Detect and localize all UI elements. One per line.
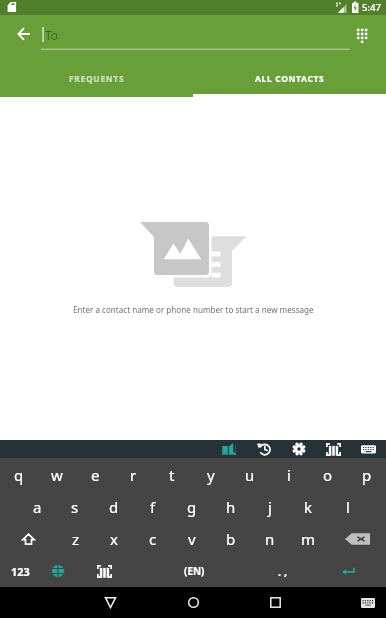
button[interactable]: i <box>269 458 308 491</box>
button[interactable]: f <box>133 491 172 523</box>
button[interactable]: Settings <box>281 440 316 458</box>
staticText: 5:47 <box>362 1 381 14</box>
button[interactable]: k <box>289 491 328 523</box>
staticText: FREQUENTS <box>69 73 125 85</box>
button[interactable]: Shift <box>0 523 57 555</box>
staticText: p <box>362 465 372 485</box>
staticText: g <box>187 497 197 517</box>
staticText: b <box>226 529 236 549</box>
staticText: u <box>245 465 255 485</box>
button[interactable]: ALL CONTACTS <box>193 62 386 97</box>
button[interactable]: Keyboard <box>351 440 386 458</box>
button[interactable]: FREQUENTS <box>0 62 193 97</box>
button[interactable]: h <box>211 491 250 523</box>
staticText: y <box>207 465 215 485</box>
staticText: f <box>150 497 156 517</box>
button[interactable]: a <box>18 491 56 523</box>
button[interactable]: Recent apps <box>255 587 296 618</box>
button[interactable]: w <box>38 458 76 491</box>
button[interactable]: Enter <box>311 555 386 587</box>
staticText: j <box>268 497 272 517</box>
button[interactable]: Home <box>173 587 214 618</box>
button[interactable]: Back <box>6 16 41 51</box>
button[interactable]: b <box>211 523 250 555</box>
staticText: t <box>169 465 175 485</box>
button[interactable]: Backspace <box>328 523 386 555</box>
staticText: s <box>71 497 79 517</box>
button[interactable]: z <box>57 523 95 555</box>
staticText: x <box>110 529 118 549</box>
button[interactable]: u <box>230 458 269 491</box>
button[interactable]: d <box>94 491 133 523</box>
button[interactable]: 123 <box>0 555 41 587</box>
button[interactable]: c <box>133 523 172 555</box>
button[interactable]: s <box>56 491 94 523</box>
button[interactable]: x <box>95 523 133 555</box>
staticText: n <box>265 529 275 549</box>
staticText: i <box>287 465 291 485</box>
button[interactable]: e <box>76 458 114 491</box>
button[interactable]: Clipboard history <box>246 440 281 458</box>
button[interactable]: r <box>114 458 152 491</box>
staticText: o <box>323 465 333 485</box>
staticText: m <box>301 529 316 549</box>
staticText: ALL CONTACTS <box>255 73 325 85</box>
button[interactable]: t <box>152 458 191 491</box>
button[interactable]: o <box>308 458 347 491</box>
button[interactable]: Back <box>90 587 131 618</box>
staticText: a <box>33 497 42 517</box>
staticText: (EN) <box>184 564 205 578</box>
button[interactable]: q <box>0 458 38 491</box>
staticText: v <box>188 529 196 549</box>
staticText: d <box>109 497 119 517</box>
staticText: 123 <box>11 564 30 579</box>
staticText: c <box>149 529 157 549</box>
staticText: l <box>346 497 350 517</box>
staticText: . , <box>278 564 288 579</box>
staticText: k <box>304 497 313 517</box>
staticText: e <box>91 465 100 485</box>
button[interactable]: g <box>172 491 211 523</box>
button[interactable]: Scan <box>316 440 351 458</box>
button[interactable]: n <box>250 523 289 555</box>
button[interactable]: y <box>191 458 230 491</box>
staticText: z <box>72 529 80 549</box>
button[interactable]: (EN) <box>134 555 255 587</box>
button[interactable]: Scan <box>74 555 134 587</box>
button[interactable]: m <box>289 523 328 555</box>
button[interactable]: Dictionary <box>211 440 246 458</box>
button[interactable]: . , <box>255 555 311 587</box>
button[interactable]: To <box>41 15 350 62</box>
staticText: q <box>14 465 24 485</box>
staticText: Enter a contact name or phone number to … <box>73 304 314 315</box>
button[interactable]: v <box>172 523 211 555</box>
button[interactable]: p <box>347 458 386 491</box>
button[interactable]: Switch keyboard <box>352 587 383 618</box>
staticText: r <box>130 465 137 485</box>
button[interactable]: Dialpad <box>345 18 381 54</box>
button[interactable]: l <box>328 491 367 523</box>
staticText: w <box>51 465 63 485</box>
staticText: h <box>226 497 236 517</box>
button[interactable]: j <box>250 491 289 523</box>
button[interactable]: Change language <box>41 555 74 587</box>
staticText: To <box>45 27 59 43</box>
